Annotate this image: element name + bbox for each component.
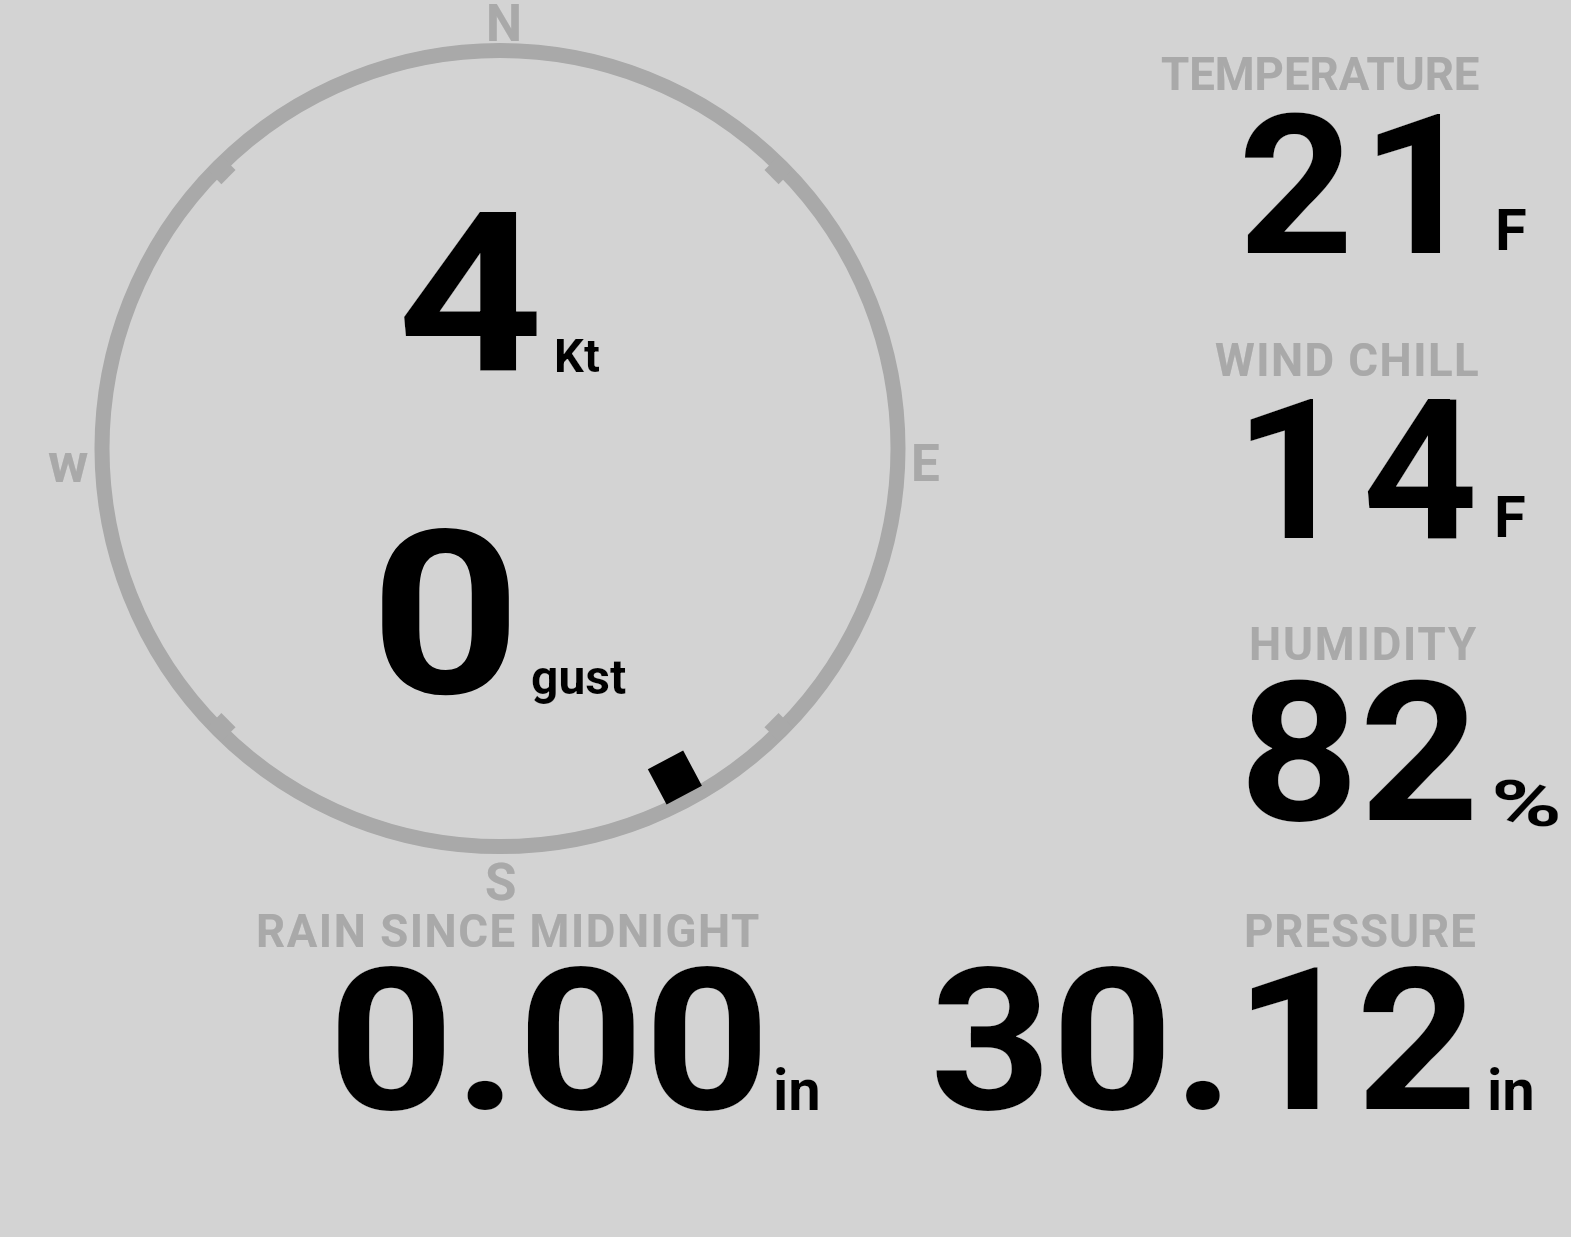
staticText: HUMIDITY	[1249, 618, 1479, 671]
staticText: %	[1491, 767, 1563, 842]
staticText: F	[1494, 483, 1526, 551]
button[interactable]: Temperature 21 degrees Fahrenheit	[1140, 30, 1571, 290]
button[interactable]: Wind direction dial, 4 knots from the so…	[0, 0, 960, 900]
staticText: RAIN SINCE MIDNIGHT	[256, 905, 761, 958]
staticText: 30.12	[930, 925, 1478, 1157]
staticText: 0	[370, 481, 522, 749]
button[interactable]: Rain since midnight 0.00 inches	[240, 890, 840, 1130]
staticText: S	[485, 853, 517, 913]
staticText: PRESSURE	[1244, 905, 1477, 958]
button[interactable]: Pressure 30.12 inches	[900, 890, 1540, 1130]
staticText: 4	[397, 165, 544, 425]
staticText: w	[48, 431, 89, 495]
staticText: in	[1487, 1056, 1535, 1124]
staticText: Kt	[554, 328, 600, 383]
staticText: 21	[1238, 73, 1484, 300]
staticText: WIND CHILL	[1215, 334, 1481, 387]
staticText: 82	[1239, 640, 1480, 867]
staticText: 14	[1234, 358, 1491, 585]
staticText: gust	[531, 649, 627, 705]
button[interactable]: Wind chill 14 degrees Fahrenheit	[1140, 316, 1571, 576]
staticText: F	[1495, 196, 1527, 264]
staticText: 0.00	[328, 925, 771, 1157]
staticText: TEMPERATURE	[1161, 48, 1480, 101]
staticText: in	[773, 1056, 821, 1124]
button[interactable]: Humidity 82 percent	[1140, 600, 1571, 860]
staticText: E	[911, 434, 940, 494]
staticText: N	[486, 0, 522, 54]
